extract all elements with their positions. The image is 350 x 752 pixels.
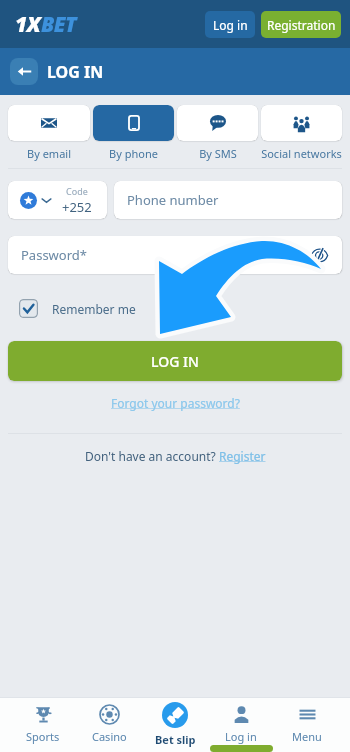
button[interactable]: 1X (15, 10, 77, 39)
staticText: Phone number (127, 191, 219, 209)
staticText: Social networks (261, 146, 342, 161)
staticText: By email (27, 146, 71, 161)
button[interactable]: Remember me (19, 299, 136, 318)
button[interactable]: Log in (208, 697, 274, 752)
button[interactable]: By SMS (177, 105, 258, 161)
staticText: 1X (15, 10, 41, 39)
staticText: Code (66, 185, 88, 197)
staticText: By SMS (199, 146, 237, 161)
button[interactable]: Registration (261, 11, 341, 38)
button[interactable]: By email (8, 105, 90, 161)
button[interactable]: Forgot your password? (111, 395, 240, 411)
staticText: BET (41, 10, 77, 39)
button[interactable]: By phone (93, 105, 174, 161)
staticText: Don't have an account? (85, 448, 219, 464)
staticText: LOG IN (151, 352, 199, 371)
staticText: Casino (92, 729, 127, 744)
staticText: Log in (225, 729, 257, 744)
staticText: Bet slip (155, 732, 196, 747)
staticText: Menu (292, 729, 322, 744)
staticText: Registration (267, 17, 336, 33)
staticText: Password* (21, 246, 87, 264)
button[interactable]: Back (10, 58, 38, 85)
button[interactable]: Menu (274, 697, 340, 752)
staticText: Remember me (52, 301, 136, 317)
staticText: LOG IN (47, 61, 104, 83)
staticText: +252 (62, 198, 92, 216)
button[interactable]: Show password (308, 244, 330, 266)
button[interactable]: Sports (10, 697, 76, 752)
staticText: Log in (213, 17, 248, 33)
button[interactable]: Casino (76, 697, 142, 752)
staticText: Sports (26, 729, 60, 744)
staticText: By phone (109, 146, 158, 161)
button[interactable]: LOG IN (8, 341, 342, 381)
button[interactable]: Code (8, 181, 107, 219)
button[interactable]: Phone number (114, 181, 342, 219)
button[interactable]: Social networks (261, 105, 342, 161)
button[interactable]: Password* (8, 236, 342, 274)
button[interactable]: Bet slip (142, 697, 208, 752)
button[interactable]: Register (219, 448, 266, 464)
button[interactable]: Log in (205, 11, 255, 38)
